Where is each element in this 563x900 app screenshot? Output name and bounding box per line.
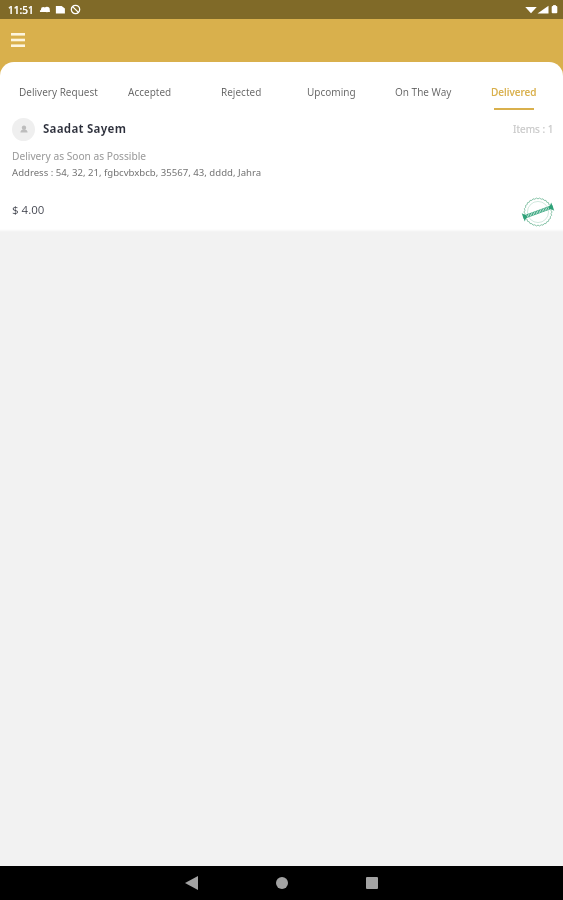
staticText: Address : 54, 32, 21, fgbcvbxbcb, 35567,… xyxy=(12,166,262,179)
button[interactable]: Upcoming xyxy=(285,62,377,110)
staticText: Delivery as Soon as Possible xyxy=(12,149,147,163)
staticText: Delivery Request xyxy=(19,85,98,99)
staticText: Rejected xyxy=(221,85,262,99)
button[interactable]: On The Way xyxy=(377,62,469,110)
button[interactable]: Rejected xyxy=(195,62,287,110)
button[interactable]: Saadat Sayem xyxy=(0,110,563,229)
button[interactable]: Delivery Request xyxy=(12,62,104,110)
button[interactable]: Home xyxy=(268,869,296,897)
button[interactable]: Accepted xyxy=(104,62,196,110)
staticText: Upcoming xyxy=(307,85,356,99)
staticText: $ 4.00 xyxy=(12,202,45,218)
staticText: Saadat Sayem xyxy=(43,121,127,137)
staticText: On The Way xyxy=(395,85,452,99)
staticText: 11:51 xyxy=(8,3,34,17)
staticText: Items : 1 xyxy=(513,122,554,136)
button[interactable]: Recents xyxy=(358,869,386,897)
staticText: Delivered xyxy=(491,85,537,99)
button[interactable]: Delivered xyxy=(468,62,560,110)
button[interactable]: Menu xyxy=(4,26,32,54)
button[interactable]: Back xyxy=(177,869,205,897)
staticText: Accepted xyxy=(128,85,172,99)
